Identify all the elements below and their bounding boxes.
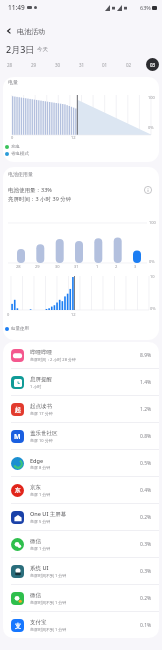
staticText: 1 — [96, 264, 99, 269]
staticText: 29 — [35, 264, 40, 269]
staticText: 8.9% — [140, 352, 152, 359]
staticText: 28 — [16, 264, 21, 269]
staticText: 省电模式 — [11, 151, 29, 157]
staticText: 63% — [140, 4, 151, 11]
staticText: 亮屏 8 分钟 — [30, 465, 51, 470]
button[interactable]: 30 — [51, 58, 64, 71]
staticText: 0.1% — [140, 622, 152, 629]
staticText: 亮屏 1 分钟 — [30, 492, 51, 497]
staticText: 系统 UI — [30, 564, 49, 572]
staticText: 电量使用 — [11, 326, 29, 332]
staticText: 亮屏时间不到 1 分钟 — [30, 600, 67, 605]
staticText: 亮屏时间：3 小时 39 分钟 — [8, 195, 72, 203]
staticText: 0 — [11, 135, 14, 140]
staticText: 0 — [7, 312, 10, 317]
button[interactable]: Info — [142, 184, 154, 196]
staticText: 亮屏 17 分钟 — [30, 411, 53, 416]
staticText: 微信 — [30, 592, 41, 599]
staticText: 支付宝 — [30, 619, 47, 626]
staticText: 电池使用量：33% — [8, 186, 52, 194]
button[interactable]: 起 — [3, 396, 159, 422]
button[interactable]: Back — [1, 23, 17, 39]
staticText: 亮屏时间不到 1 分钟 — [30, 627, 67, 632]
staticText: 0.2% — [140, 514, 152, 521]
button[interactable]: 哔哩哔哩 — [3, 342, 159, 368]
staticText: 30 — [55, 62, 61, 68]
staticText: 起点读书 — [30, 403, 52, 410]
staticText: 2 — [115, 264, 118, 269]
staticText: 电池使用量 — [8, 171, 33, 177]
staticText: 亮屏 10 分钟 — [30, 438, 53, 443]
staticText: 12 — [71, 312, 76, 317]
staticText: 亮屏时间不到 1 分钟 — [30, 573, 67, 578]
button[interactable]: 01 — [98, 58, 111, 71]
button[interactable]: 31 — [75, 58, 88, 71]
staticText: 电池活动 — [17, 27, 45, 36]
staticText: 31 — [79, 62, 85, 68]
staticText: Edge — [30, 457, 44, 464]
staticText: 哔哩哔哩 — [30, 349, 52, 356]
button[interactable]: 28 — [3, 58, 16, 71]
staticText: 东 — [15, 487, 21, 494]
staticText: 02 — [126, 62, 132, 68]
staticText: 1.2% — [140, 406, 152, 413]
staticText: 2月3日 — [6, 43, 35, 55]
staticText: 支 — [15, 622, 21, 630]
button[interactable]: 支 — [3, 612, 159, 638]
staticText: 1 小时 — [30, 384, 42, 389]
staticText: 11:49 — [8, 3, 25, 12]
staticText: 亮屏时间：2 小时 28 分钟 — [30, 357, 76, 362]
staticText: 起 — [15, 406, 21, 414]
staticText: 28 — [7, 62, 13, 68]
button[interactable]: Edge — [3, 450, 159, 476]
staticText: 充电 — [11, 144, 20, 150]
staticText: 100 — [148, 95, 155, 100]
staticText: 0.3% — [140, 568, 152, 575]
staticText: 0.5% — [140, 460, 152, 467]
button[interactable]: 微信 — [3, 531, 159, 557]
staticText: 03 — [150, 62, 156, 68]
staticText: 亮屏 5 分钟 — [30, 519, 51, 524]
button[interactable]: 系统 UI — [3, 558, 159, 584]
staticText: 0% — [149, 259, 155, 264]
staticText: 12 — [71, 135, 76, 140]
button[interactable]: 微信 — [3, 585, 159, 611]
staticText: 0.8% — [140, 433, 152, 440]
staticText: 29 — [31, 62, 37, 68]
staticText: 30 — [55, 264, 60, 269]
button[interactable]: One UI 主屏幕 — [3, 504, 159, 530]
staticText: 01 — [102, 62, 108, 68]
staticText: 3 — [134, 264, 137, 269]
staticText: 盖乐世社区 — [30, 430, 58, 437]
staticText: 京东 — [30, 484, 41, 491]
staticText: M — [14, 432, 21, 442]
button[interactable]: M — [3, 423, 159, 449]
staticText: 0.3% — [140, 541, 152, 548]
button[interactable]: 东 — [3, 477, 159, 503]
button[interactable]: 03 — [146, 58, 159, 71]
staticText: 1.4% — [140, 379, 152, 386]
button[interactable]: 息屏提醒 — [3, 369, 159, 395]
staticText: 今天 — [37, 46, 48, 53]
staticText: 亮屏 1 分钟 — [30, 546, 51, 551]
button[interactable]: 29 — [27, 58, 40, 71]
staticText: One UI 主屏幕 — [30, 510, 67, 518]
staticText: 0.2% — [140, 595, 152, 602]
staticText: 10 — [150, 274, 155, 279]
staticText: 31 — [74, 264, 79, 269]
staticText: 0% — [150, 306, 156, 311]
staticText: 息屏提醒 — [30, 376, 52, 383]
button[interactable]: 02 — [122, 58, 135, 71]
staticText: 电量 — [8, 79, 18, 85]
staticText: 100 — [149, 220, 156, 225]
staticText: 0.4% — [140, 487, 152, 494]
staticText: 微信 — [30, 538, 41, 545]
staticText: 0% — [148, 125, 154, 130]
